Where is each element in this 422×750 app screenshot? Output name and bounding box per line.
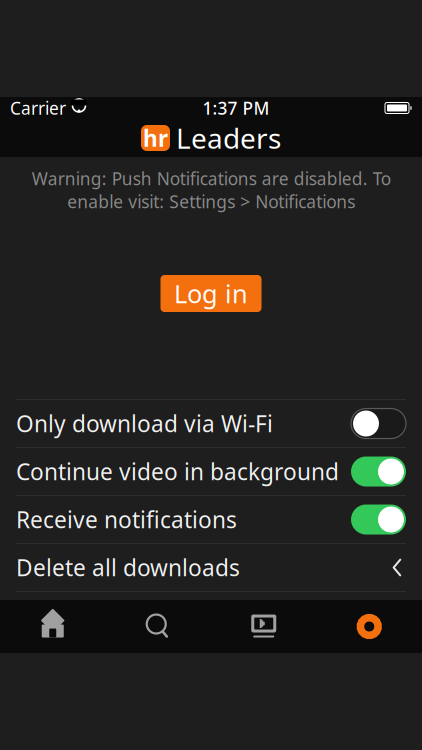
staticText: Log in (174, 277, 248, 310)
staticText: Warning: Push Notifications are disabled… (31, 167, 390, 213)
button[interactable]: Home (0, 600, 105, 653)
staticText: Delete all downloads (16, 552, 240, 583)
staticText: Carrier (10, 96, 66, 119)
staticText: Continue video in background (16, 456, 339, 487)
button[interactable]: Delete all downloads (0, 544, 422, 591)
button[interactable]: Settings (316, 600, 422, 653)
staticText: Leaders (176, 119, 281, 157)
button[interactable]: Only download via Wi-Fi (0, 400, 422, 447)
button[interactable]: Continue video in background (0, 448, 422, 495)
button[interactable]: Videos (211, 600, 316, 653)
staticText: Only download via Wi-Fi (16, 408, 273, 439)
staticText: 1:37 PM (202, 96, 269, 119)
staticText: hr (143, 123, 168, 153)
button[interactable]: Search (105, 600, 211, 653)
button[interactable]: Receive notifications (0, 496, 422, 543)
staticText: Receive notifications (16, 504, 237, 535)
button[interactable]: Log in (160, 275, 261, 312)
